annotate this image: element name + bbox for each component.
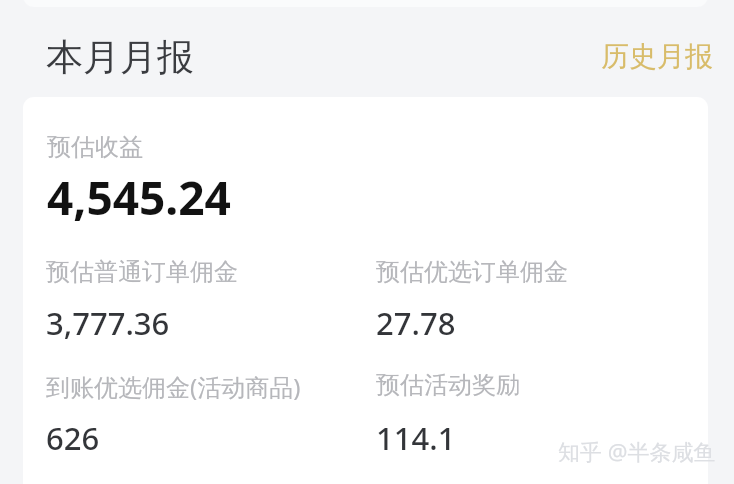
button[interactable]: 预估活动奖励 (376, 370, 520, 459)
button[interactable]: 到账优选佣金(活动商品) (46, 370, 301, 459)
staticText: 预估收益 (47, 132, 143, 162)
button[interactable]: 预估普通订单佣金 (46, 257, 238, 344)
staticText: 知乎 @半条咸鱼 (558, 436, 716, 466)
staticText: 3,777.36 (46, 302, 170, 344)
staticText: 114.1 (376, 417, 456, 459)
button[interactable]: 本月月报 (40, 26, 200, 89)
staticText: 预估优选订单佣金 (376, 257, 568, 287)
staticText: 预估普通订单佣金 (46, 257, 238, 287)
button[interactable]: 预估收益 (47, 132, 231, 229)
button[interactable]: 预估优选订单佣金 (376, 257, 568, 344)
staticText: 626 (46, 417, 100, 459)
button[interactable]: 历史月报 (585, 25, 729, 88)
staticText: 本月月报 (46, 34, 194, 81)
staticText: 预估活动奖励 (376, 370, 520, 400)
staticText: 27.78 (376, 302, 456, 344)
staticText: 到账优选佣金(活动商品) (46, 370, 301, 403)
staticText: 4,545.24 (47, 166, 231, 229)
staticText: 历史月报 (601, 39, 713, 74)
